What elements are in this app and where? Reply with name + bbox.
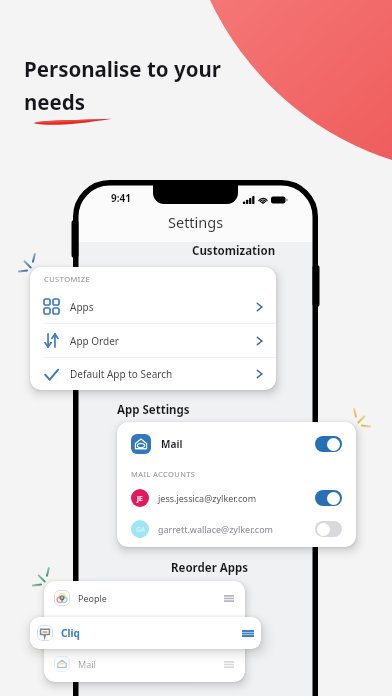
staticText: App Order: [70, 334, 119, 348]
staticText: CUSTOMIZE: [44, 274, 91, 284]
staticText: Mail: [161, 437, 183, 451]
staticText: Personalise to your: [24, 55, 221, 83]
staticText: Cliq: [61, 626, 80, 640]
staticText: Reorder Apps: [171, 560, 249, 576]
button[interactable]: People: [44, 581, 245, 615]
button[interactable]: Toggle on: [315, 490, 342, 506]
button[interactable]: Toggle off: [315, 521, 342, 537]
button[interactable]: Apps: [30, 290, 276, 323]
button[interactable]: Default App to Search: [30, 358, 276, 390]
staticText: People: [78, 592, 107, 604]
button[interactable]: Mail: [117, 422, 356, 465]
staticText: needs: [24, 88, 86, 116]
staticText: 9:41: [111, 191, 131, 205]
button[interactable]: Toggle on: [315, 436, 342, 452]
staticText: Default App to Search: [70, 367, 173, 381]
staticText: Mail: [78, 658, 96, 670]
button[interactable]: JE: [117, 482, 356, 513]
button[interactable]: App Order: [30, 324, 276, 357]
staticText: jess.jessica@zylker.com: [158, 492, 257, 504]
button[interactable]: GA: [117, 513, 356, 544]
staticText: GA: [136, 525, 145, 534]
button[interactable]: Mail: [44, 647, 245, 681]
staticText: Settings: [168, 212, 224, 232]
staticText: JE: [137, 494, 143, 503]
staticText: MAIL ACCOUNTS: [131, 469, 196, 479]
staticText: Customization: [192, 243, 276, 259]
button[interactable]: Cliq: [30, 617, 261, 649]
staticText: Apps: [70, 300, 94, 314]
staticText: App Settings: [117, 402, 190, 418]
staticText: garrett.wallace@zylker.com: [158, 523, 274, 535]
